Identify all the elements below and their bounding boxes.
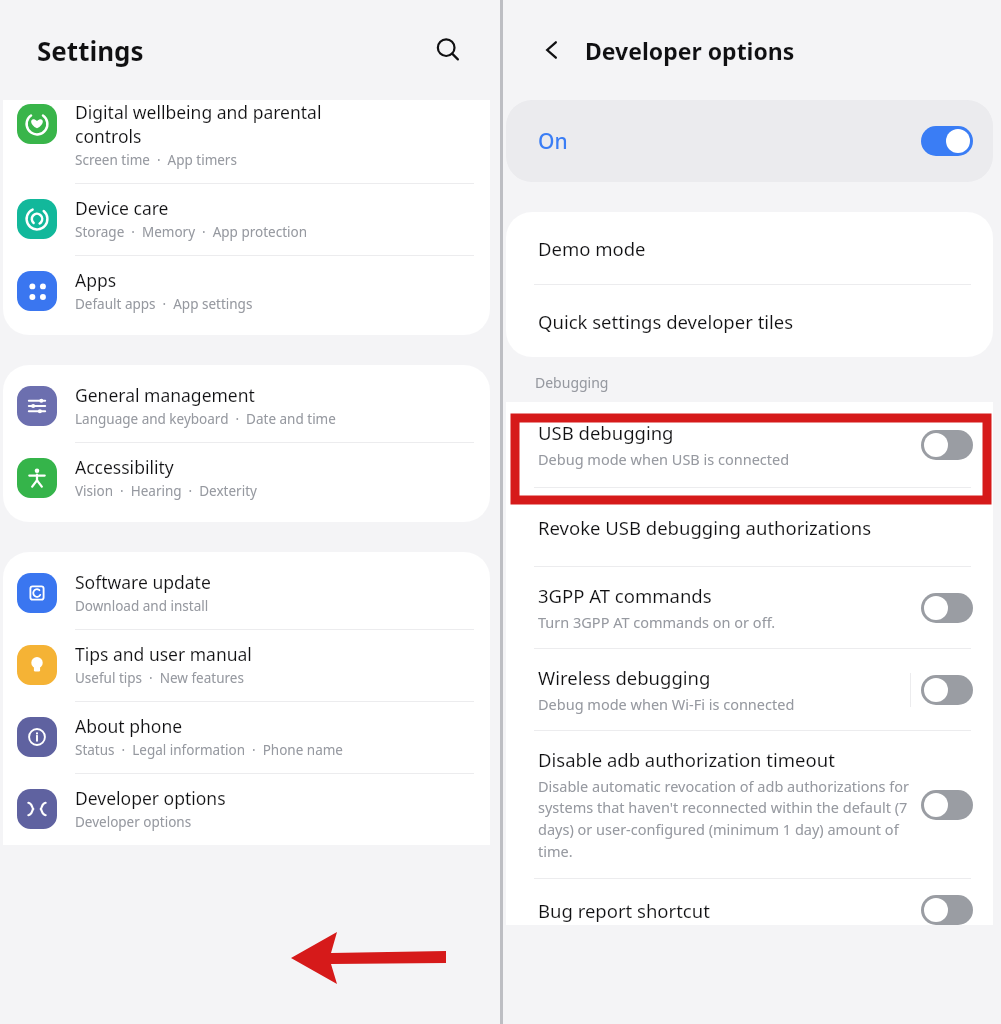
staticText: Disable adb authorization timeout: [538, 747, 835, 772]
staticText: Bug report shortcut: [538, 898, 710, 923]
staticText: About phone: [75, 714, 183, 738]
staticText: Language and keyboard · Date and time: [75, 410, 336, 428]
staticText: Disable automatic revocation of adb auth…: [538, 776, 909, 862]
button[interactable]: Demo mode: [506, 212, 993, 284]
staticText: Useful tips · New features: [75, 669, 244, 687]
button[interactable]: Digital wellbeing and parental: [3, 100, 490, 183]
staticText: Settings: [37, 33, 426, 68]
staticText: Accessibility: [75, 455, 174, 479]
staticText: 3GPP AT commands: [538, 583, 712, 608]
staticText: Device care: [75, 196, 169, 220]
button[interactable]: Bug report shortcut: [506, 879, 993, 925]
staticText: Status · Legal information · Phone name: [75, 741, 343, 759]
button[interactable]: Toggle off: [921, 790, 973, 820]
staticText: General management: [75, 383, 255, 407]
staticText: Quick settings developer tiles: [538, 309, 794, 334]
staticText: Turn 3GPP AT commands on or off.: [538, 612, 776, 632]
staticText: controls: [75, 124, 142, 148]
button[interactable]: Quick settings developer tiles: [506, 285, 993, 357]
staticText: Apps: [75, 268, 117, 292]
staticText: Tips and user manual: [75, 642, 252, 666]
button[interactable]: Toggle off: [921, 895, 973, 925]
button[interactable]: General management: [3, 371, 490, 442]
button[interactable]: Tips and user manual: [3, 630, 490, 701]
staticText: Vision · Hearing · Dexterity: [75, 482, 257, 500]
button[interactable]: Toggle off: [921, 593, 973, 623]
staticText: Download and install: [75, 597, 209, 615]
button[interactable]: Toggle off: [921, 430, 973, 460]
staticText: Developer options: [585, 35, 795, 66]
staticText: Wireless debugging: [538, 665, 711, 690]
button[interactable]: Developer options: [3, 774, 490, 845]
button[interactable]: About phone: [3, 702, 490, 773]
button[interactable]: On: [506, 100, 993, 182]
button[interactable]: Accessibility: [3, 443, 490, 514]
staticText: USB debugging: [538, 420, 674, 445]
button[interactable]: Search: [426, 28, 470, 72]
button[interactable]: Toggle on: [921, 126, 973, 156]
staticText: Developer options: [75, 813, 192, 831]
staticText: On: [538, 127, 921, 156]
staticText: Software update: [75, 570, 211, 594]
staticText: Storage · Memory · App protection: [75, 223, 308, 241]
button[interactable]: Apps: [3, 256, 490, 327]
staticText: Debug mode when Wi-Fi is connected: [538, 694, 795, 714]
button[interactable]: Disable adb authorization timeout: [506, 731, 993, 878]
button[interactable]: USB debugging: [506, 402, 993, 487]
staticText: Developer options: [75, 786, 226, 810]
button[interactable]: 3GPP AT commands: [506, 567, 993, 648]
staticText: Revoke USB debugging authorizations: [538, 515, 872, 540]
staticText: Debugging: [535, 373, 609, 392]
button[interactable]: Device care: [3, 184, 490, 255]
staticText: Demo mode: [538, 236, 646, 261]
button[interactable]: Back: [531, 29, 573, 71]
button[interactable]: Toggle off: [921, 675, 973, 705]
staticText: Debug mode when USB is connected: [538, 449, 790, 469]
staticText: Default apps · App settings: [75, 295, 253, 313]
staticText: Screen time · App timers: [75, 151, 237, 169]
button[interactable]: Wireless debugging: [506, 649, 993, 730]
button[interactable]: Software update: [3, 558, 490, 629]
button[interactable]: Revoke USB debugging authorizations: [506, 488, 993, 566]
staticText: Digital wellbeing and parental: [75, 100, 322, 124]
